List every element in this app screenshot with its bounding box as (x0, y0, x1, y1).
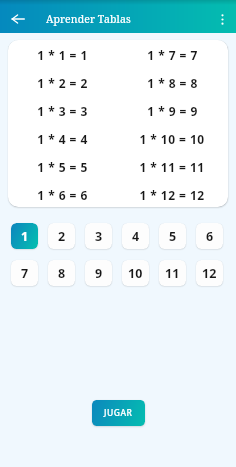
button[interactable]: Back (6, 7, 30, 31)
staticText: 8 (58, 265, 66, 282)
staticText: 1 * 4 = 4 (37, 131, 88, 147)
staticText: 7 (21, 265, 29, 282)
staticText: 1 * 1 = 1 (37, 47, 88, 63)
staticText: 1 * 3 = 3 (37, 103, 88, 119)
staticText: 4 (132, 228, 140, 245)
staticText: 12 (202, 265, 217, 282)
staticText: Aprender Tablas (46, 12, 131, 26)
staticText: 1 * 2 = 2 (37, 75, 88, 91)
button[interactable]: 3 (85, 223, 112, 249)
button[interactable]: 7 (11, 260, 38, 286)
button[interactable]: 5 (159, 223, 186, 249)
staticText: 1 * 9 = 9 (147, 103, 198, 119)
staticText: 1 * 12 = 12 (139, 187, 205, 203)
button[interactable]: JUGAR (92, 400, 145, 426)
staticText: 6 (206, 228, 214, 245)
button[interactable]: 1 (11, 223, 38, 249)
staticText: 1 (21, 228, 29, 245)
staticText: 1 * 10 = 10 (139, 131, 205, 147)
staticText: 1 * 6 = 6 (37, 187, 88, 203)
staticText: 1 * 5 = 5 (37, 159, 88, 175)
button[interactable]: 11 (159, 260, 186, 286)
staticText: 5 (169, 228, 177, 245)
staticText: 11 (165, 265, 180, 282)
staticText: 1 * 11 = 11 (139, 159, 205, 175)
button[interactable]: 8 (48, 260, 75, 286)
button[interactable]: More options (210, 7, 234, 31)
staticText: JUGAR (104, 407, 133, 419)
button[interactable]: 2 (48, 223, 75, 249)
staticText: 1 * 8 = 8 (147, 75, 198, 91)
staticText: 3 (95, 228, 103, 245)
button[interactable]: 6 (196, 223, 223, 249)
button[interactable]: 10 (122, 260, 149, 286)
button[interactable]: 4 (122, 223, 149, 249)
button[interactable]: 9 (85, 260, 112, 286)
staticText: 9 (95, 265, 103, 282)
staticText: 1 * 7 = 7 (147, 47, 198, 63)
button[interactable]: 12 (196, 260, 223, 286)
staticText: 10 (128, 265, 143, 282)
staticText: 2 (58, 228, 66, 245)
